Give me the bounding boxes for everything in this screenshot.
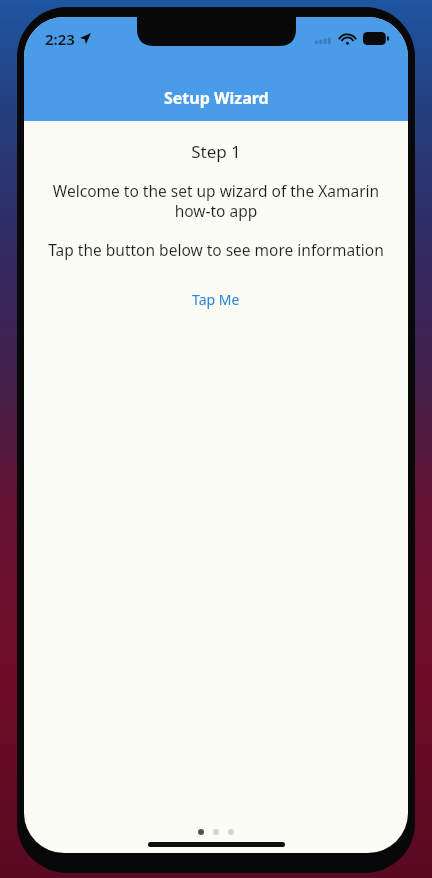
button[interactable]: Tap Me (182, 286, 250, 313)
staticText: Tap Me (192, 290, 240, 309)
staticText: Step 1 (24, 140, 408, 163)
staticText: Setup Wizard (164, 87, 269, 109)
staticText: 2:23 (45, 29, 75, 49)
staticText: Tap the button below to see more informa… (32, 239, 400, 260)
staticText: Welcome to the set up wizard of the Xama… (48, 180, 384, 222)
other: Location (80, 33, 91, 44)
